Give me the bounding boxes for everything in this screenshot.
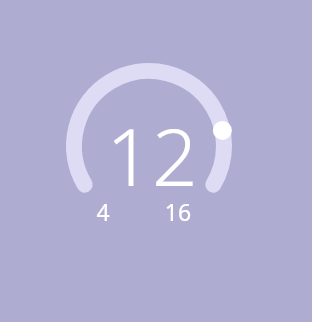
staticText: 16 xyxy=(158,196,198,226)
staticText: 12 xyxy=(89,100,215,192)
staticText: 4 xyxy=(88,196,118,226)
button[interactable]: Step goal gauge, 12 of 16 xyxy=(0,0,312,322)
